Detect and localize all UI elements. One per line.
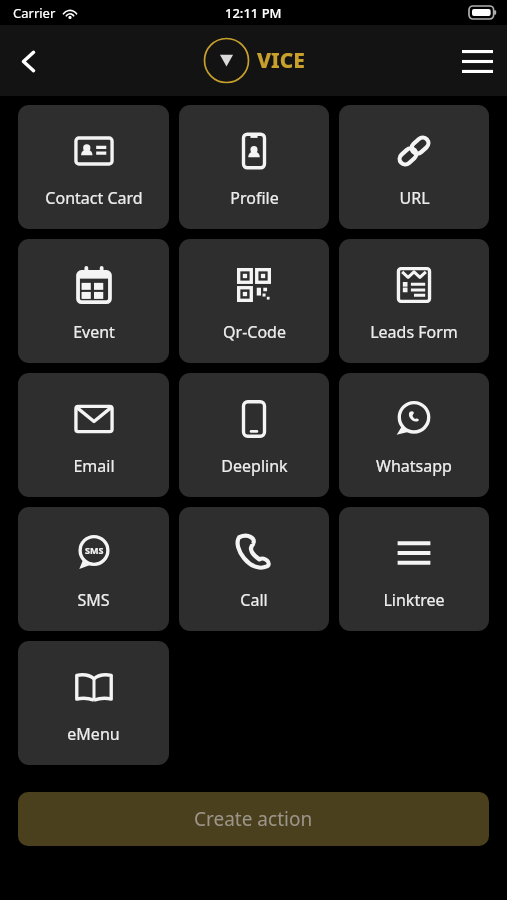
staticText: Leads Form bbox=[370, 321, 458, 343]
button[interactable]: Menu bbox=[453, 37, 501, 85]
button[interactable]: Contact Card bbox=[18, 105, 169, 229]
button[interactable]: Leads Form bbox=[339, 239, 489, 363]
button[interactable]: eMenu bbox=[18, 641, 169, 765]
button[interactable]: Qr-Code bbox=[179, 239, 329, 363]
button[interactable]: Whatsapp bbox=[339, 373, 489, 497]
staticText: Whatsapp bbox=[376, 455, 452, 477]
staticText: Contact Card bbox=[45, 187, 143, 209]
staticText: Carrier bbox=[13, 4, 56, 22]
staticText: Profile bbox=[230, 187, 279, 209]
button[interactable]: SMS bbox=[18, 507, 169, 631]
button[interactable]: Create action bbox=[18, 792, 489, 846]
staticText: SMS bbox=[85, 544, 104, 556]
button[interactable]: Linktree bbox=[339, 507, 489, 631]
button[interactable]: Call bbox=[179, 507, 329, 631]
button[interactable]: Event bbox=[18, 239, 169, 363]
staticText: eMenu bbox=[67, 723, 120, 745]
staticText: Call bbox=[240, 589, 268, 611]
staticText: VICE bbox=[257, 46, 305, 75]
button[interactable]: Email bbox=[18, 373, 169, 497]
staticText: 12:11 PM bbox=[225, 4, 282, 22]
staticText: Qr-Code bbox=[223, 321, 286, 343]
staticText: Linktree bbox=[383, 589, 445, 611]
staticText: Create action bbox=[194, 806, 313, 832]
staticText: URL bbox=[399, 187, 430, 209]
staticText: Event bbox=[73, 321, 115, 343]
button[interactable]: URL bbox=[339, 105, 489, 229]
button[interactable]: Deeplink bbox=[179, 373, 329, 497]
staticText: Email bbox=[73, 455, 115, 477]
staticText: SMS bbox=[77, 589, 110, 611]
button[interactable]: Profile bbox=[179, 105, 329, 229]
staticText: Deeplink bbox=[221, 455, 288, 477]
button[interactable]: Back bbox=[4, 37, 52, 85]
